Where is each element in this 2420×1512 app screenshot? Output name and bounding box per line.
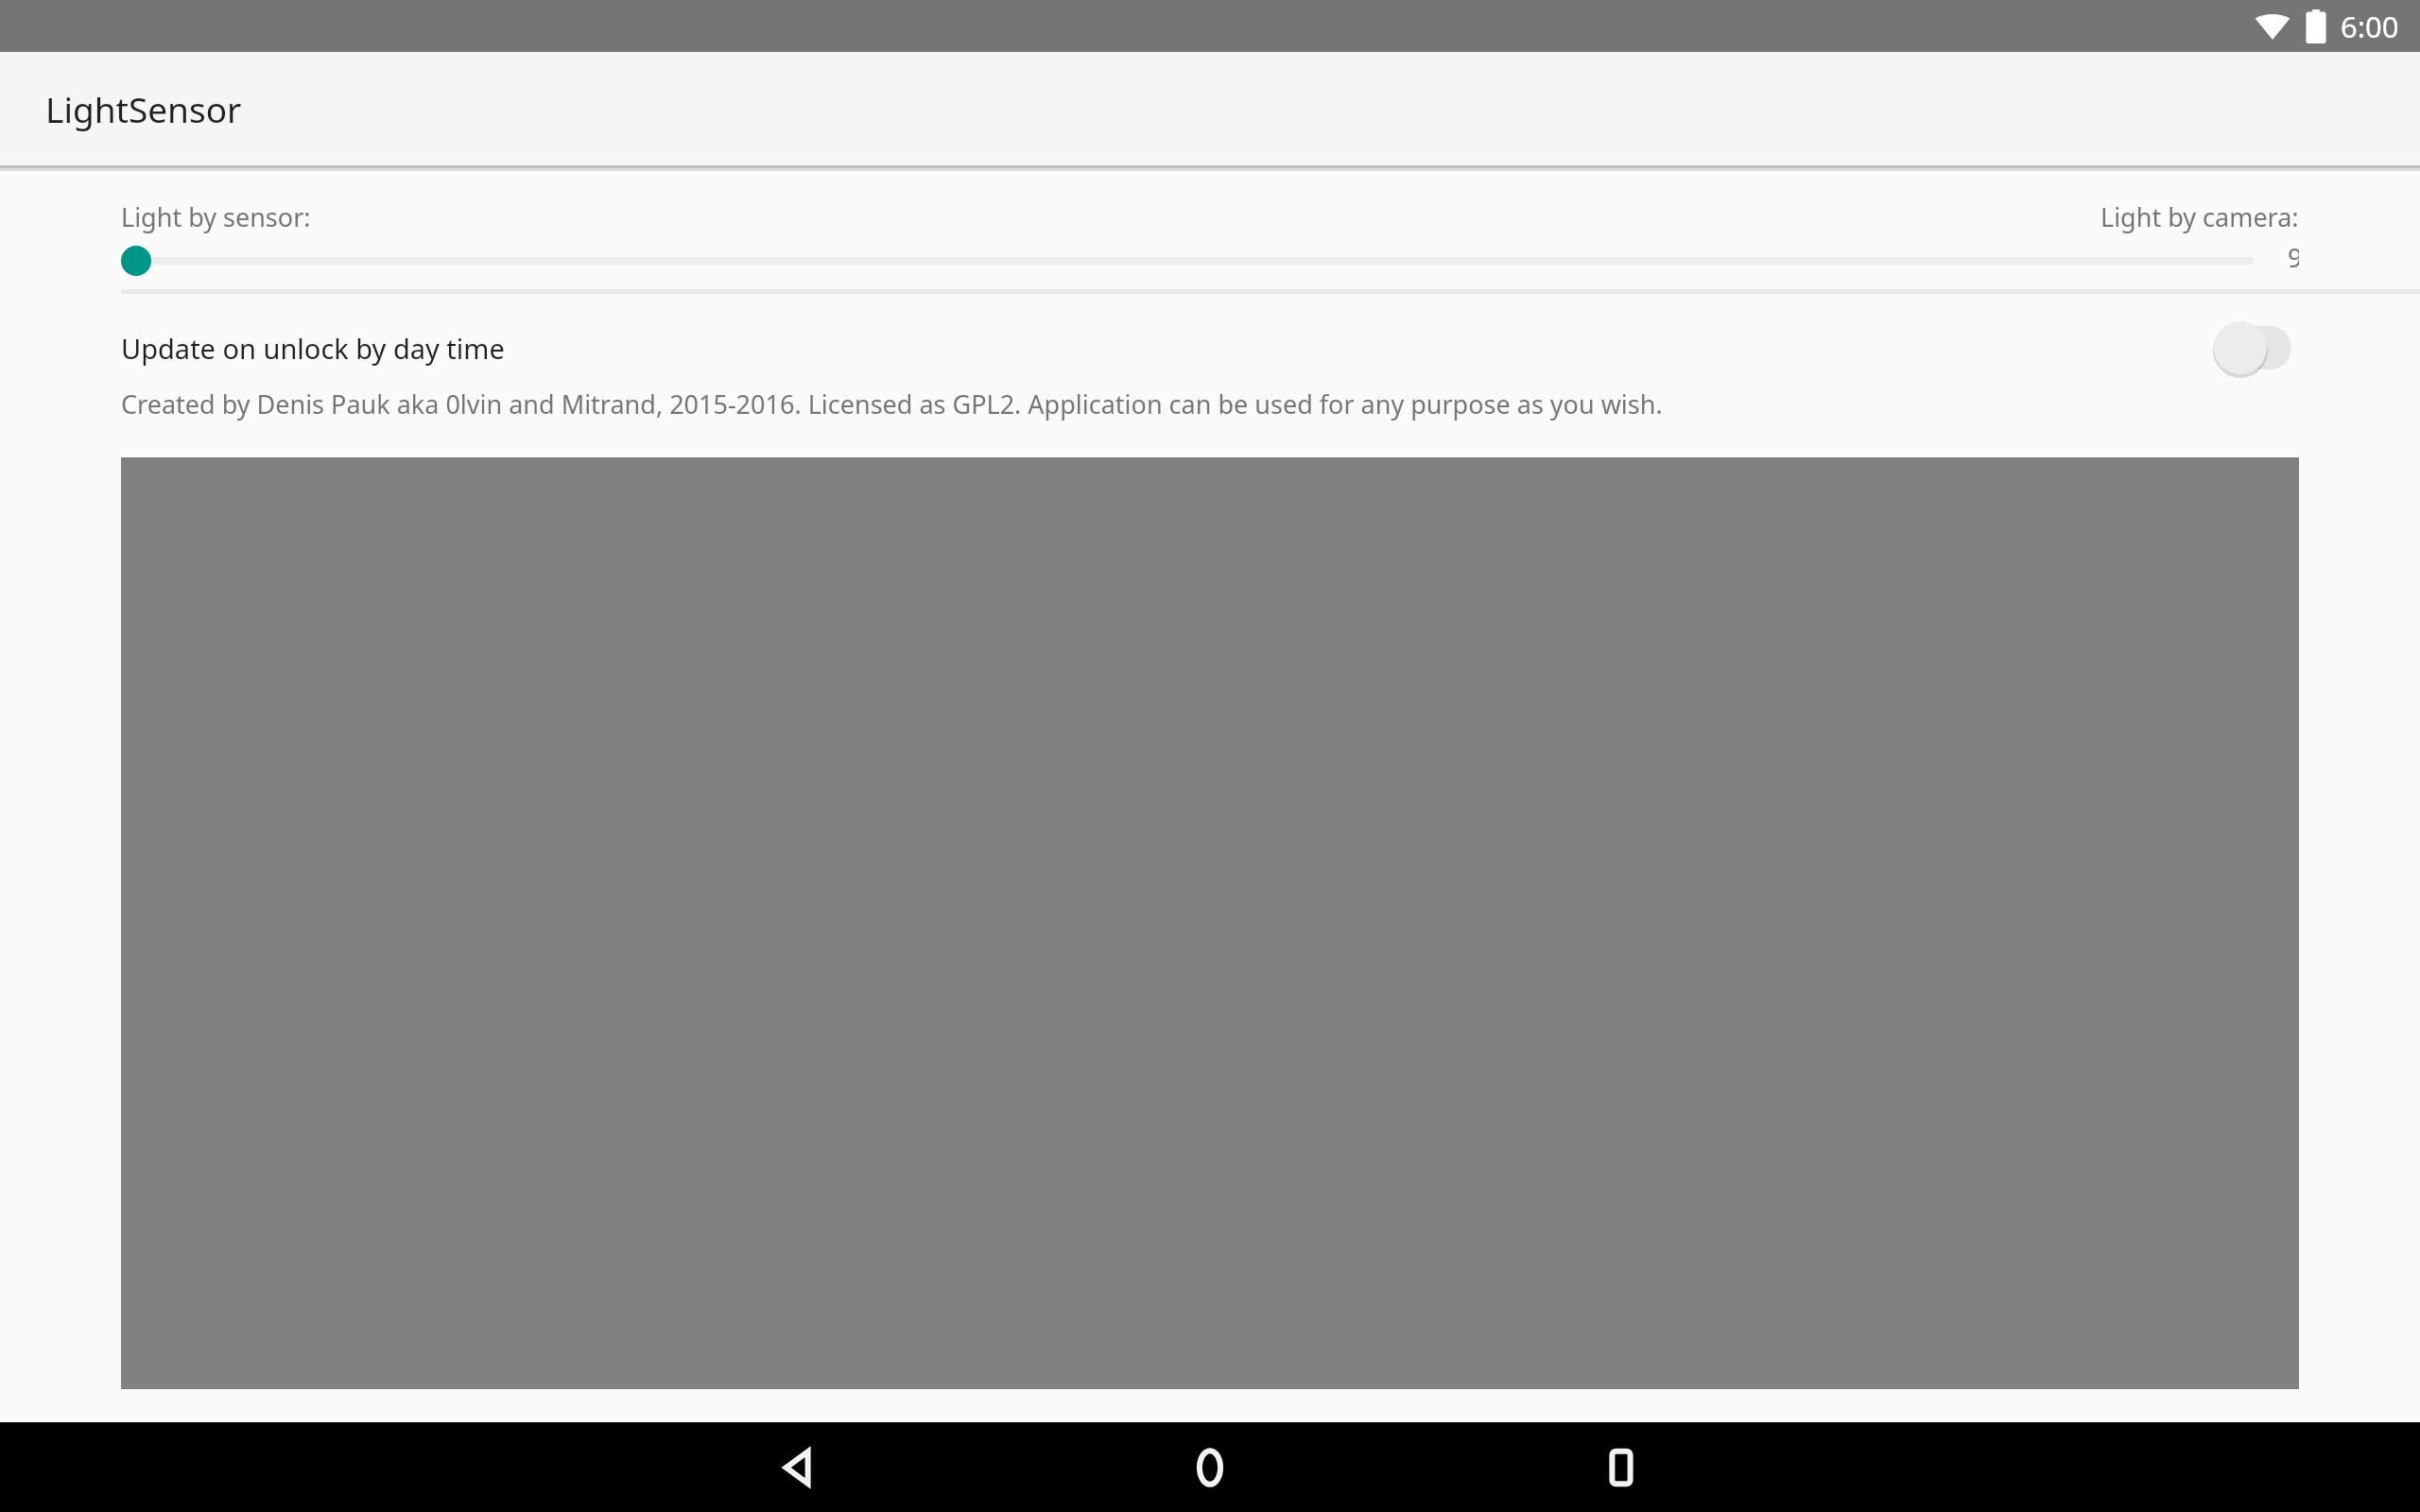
staticText: Update on unlock by day time [121, 330, 505, 367]
button[interactable] [121, 240, 2254, 282]
button[interactable]: Update on unlock by day time toggle [2212, 315, 2316, 381]
staticText: 6:00 [2341, 7, 2399, 46]
button[interactable]: Update on unlock by day time [0, 315, 2420, 381]
button[interactable]: Home [1106, 1422, 1314, 1512]
staticText: Light by sensor: [121, 199, 311, 234]
button[interactable]: Back [695, 1422, 903, 1512]
button[interactable]: Camera preview [121, 457, 2299, 1389]
staticText: Light by camera: [2100, 199, 2299, 234]
button[interactable]: Recent apps [1517, 1422, 1725, 1512]
staticText: 9.9x [2288, 240, 2299, 282]
staticText: Created by Denis Pauk aka 0lvin and Mitr… [121, 387, 1663, 421]
staticText: LightSensor [45, 85, 242, 132]
